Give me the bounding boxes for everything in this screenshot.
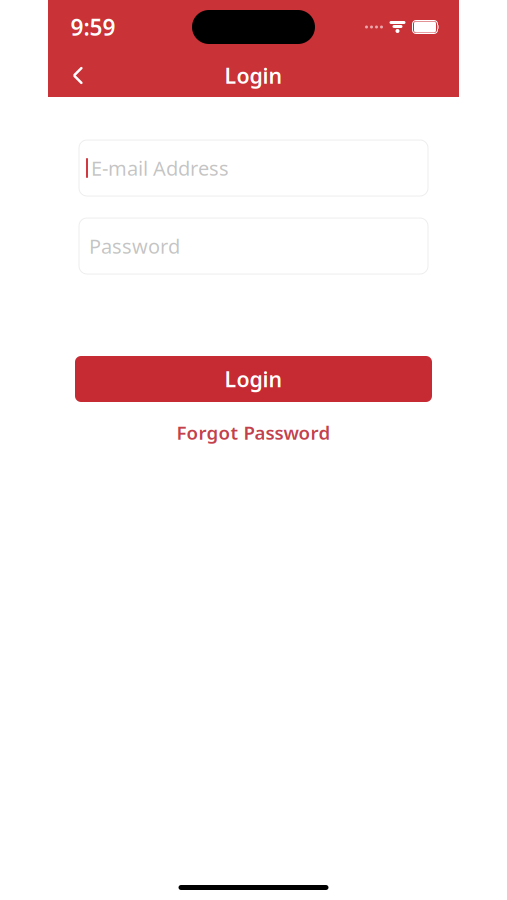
staticText: Login [224, 365, 282, 393]
button[interactable]: Login [75, 356, 432, 402]
button[interactable]: Back [56, 55, 100, 95]
staticText: Forgot Password [176, 420, 330, 445]
staticText: Login [224, 61, 282, 90]
staticText: E-mail Address [91, 155, 229, 181]
button[interactable]: Forgot Password [164, 414, 342, 451]
staticText: 9:59 [70, 12, 115, 42]
staticText: Password [89, 233, 180, 259]
